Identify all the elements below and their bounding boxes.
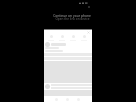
button[interactable]: Action 3 <box>68 35 77 43</box>
button[interactable]: Action 2 <box>57 35 66 43</box>
button[interactable]: Action 4 <box>79 35 88 43</box>
button[interactable]: Tab 2 <box>63 95 72 102</box>
staticText: Continue on your phone <box>53 13 91 17</box>
button[interactable]: Tab 1 <box>52 95 61 102</box>
staticText: Open the link on device <box>55 17 90 21</box>
button[interactable]: Close <box>87 31 90 34</box>
button[interactable]: Tab 3 <box>74 95 83 102</box>
button[interactable]: Action 1 <box>46 35 55 43</box>
